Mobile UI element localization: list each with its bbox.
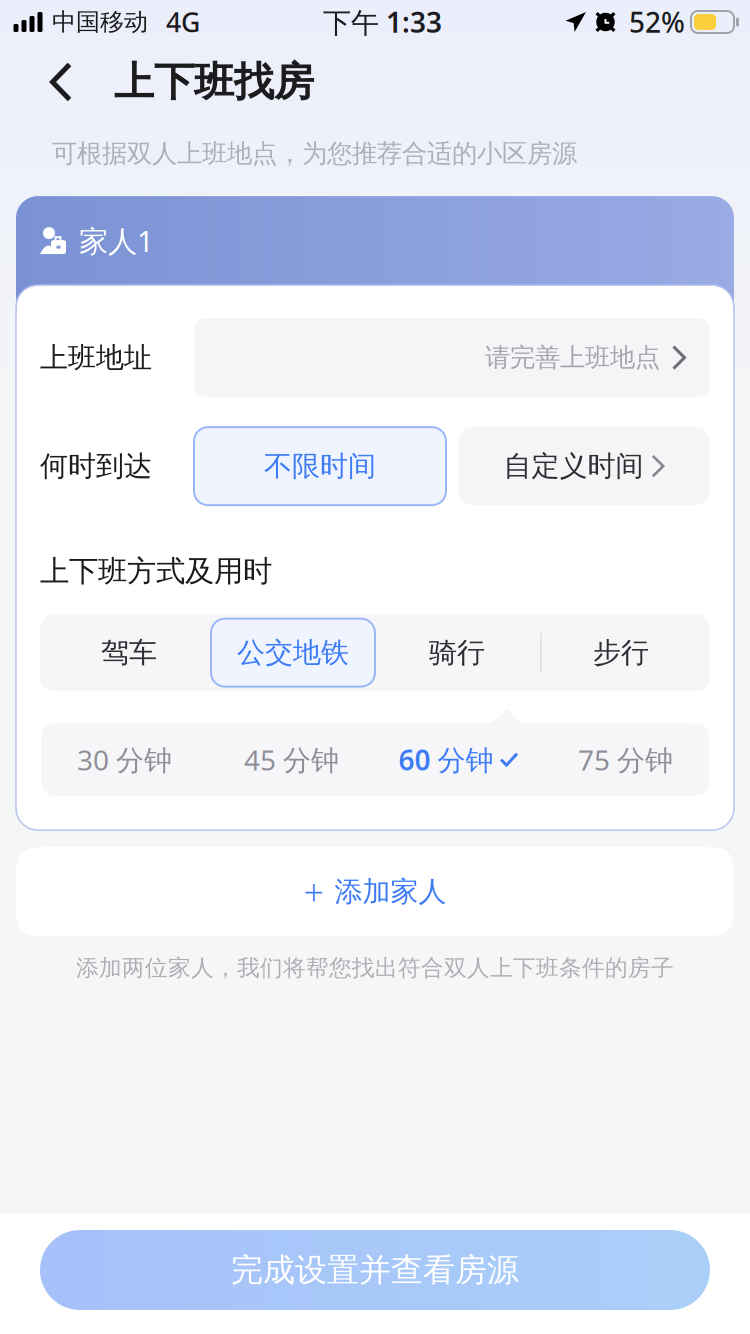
button[interactable]: 完成设置并查看房源 xyxy=(40,1230,710,1310)
staticText: + xyxy=(303,868,324,915)
staticText: 公交地铁 xyxy=(237,635,349,670)
staticText: 何时到达 xyxy=(40,449,152,483)
button[interactable]: 驾车 xyxy=(47,619,211,687)
staticText: 家人1 xyxy=(79,221,154,260)
staticText: 30 分钟 xyxy=(77,741,172,778)
staticText: 骑行 xyxy=(429,635,485,670)
staticText: 步行 xyxy=(593,635,649,670)
staticText: 请完善上班地点 xyxy=(485,342,660,373)
button[interactable]: 45 分钟 xyxy=(208,723,375,796)
button[interactable]: 60 分钟 xyxy=(375,723,542,796)
staticText: 驾车 xyxy=(101,635,157,670)
staticText: 可根据双人上班地点，为您推荐合适的小区房源 xyxy=(52,138,577,169)
button[interactable]: 自定义时间 xyxy=(458,427,710,505)
button[interactable]: 请完善上班地点 xyxy=(194,318,710,397)
staticText: 45 分钟 xyxy=(244,741,339,778)
staticText: 添加两位家人，我们将帮您找出符合双人上下班条件的房子 xyxy=(76,954,674,982)
staticText: 下午 1:33 xyxy=(323,3,442,41)
staticText: 上班地址 xyxy=(40,340,152,375)
button[interactable]: + xyxy=(16,847,734,936)
staticText: 60 分钟 xyxy=(398,741,493,778)
button[interactable]: 30 分钟 xyxy=(41,723,208,796)
staticText: 4G xyxy=(166,4,200,40)
staticText: 75 分钟 xyxy=(578,741,673,778)
staticText: 不限时间 xyxy=(264,449,376,483)
staticText: 中国移动 xyxy=(52,7,148,37)
staticText: 自定义时间 xyxy=(503,449,643,483)
staticText: 上下班方式及用时 xyxy=(40,553,272,589)
button[interactable]: 75 分钟 xyxy=(542,723,709,796)
button[interactable]: 公交地铁 xyxy=(211,619,375,687)
button[interactable]: 不限时间 xyxy=(194,427,446,505)
staticText: 添加家人 xyxy=(334,874,446,909)
button[interactable]: 骑行 xyxy=(375,619,539,687)
staticText: 上下班找房 xyxy=(114,57,314,106)
button[interactable]: Back xyxy=(33,48,89,116)
button[interactable]: 步行 xyxy=(539,619,703,687)
staticText: 完成设置并查看房源 xyxy=(231,1250,519,1290)
staticText: 52% xyxy=(629,3,685,41)
